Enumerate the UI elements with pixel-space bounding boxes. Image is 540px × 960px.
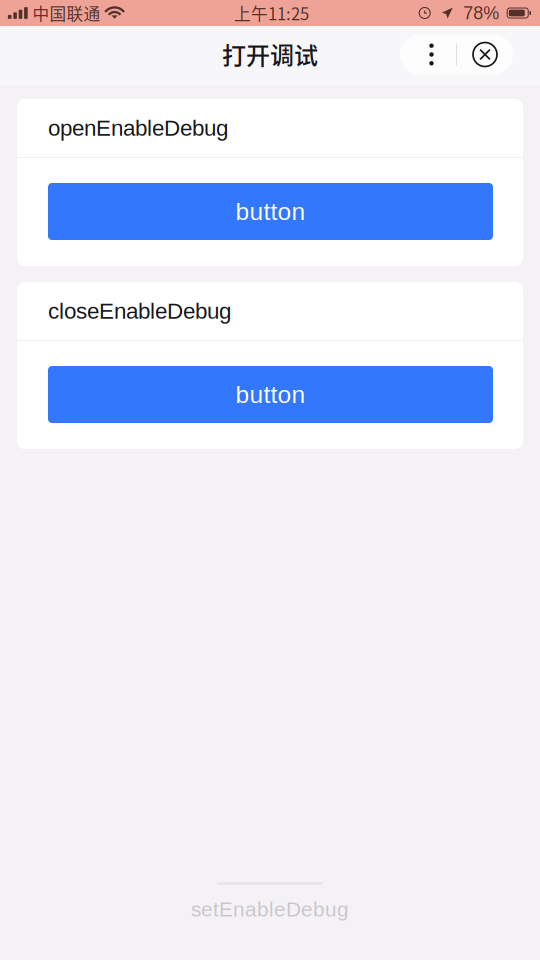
button[interactable]: button bbox=[48, 366, 493, 423]
staticText: 上午11:25 bbox=[234, 1, 309, 25]
staticText: closeEnableDebug bbox=[48, 298, 231, 323]
staticText: 78% bbox=[463, 3, 499, 23]
button[interactable]: Close bbox=[457, 34, 513, 74]
button[interactable]: button bbox=[48, 183, 493, 240]
staticText: 打开调试 bbox=[222, 37, 318, 71]
staticText: button bbox=[235, 381, 305, 408]
staticText: 中国联通 bbox=[33, 1, 101, 25]
staticText: openEnableDebug bbox=[48, 115, 228, 140]
staticText: setEnableDebug bbox=[191, 898, 349, 921]
staticText: button bbox=[235, 198, 305, 225]
button[interactable]: More options bbox=[400, 34, 456, 74]
